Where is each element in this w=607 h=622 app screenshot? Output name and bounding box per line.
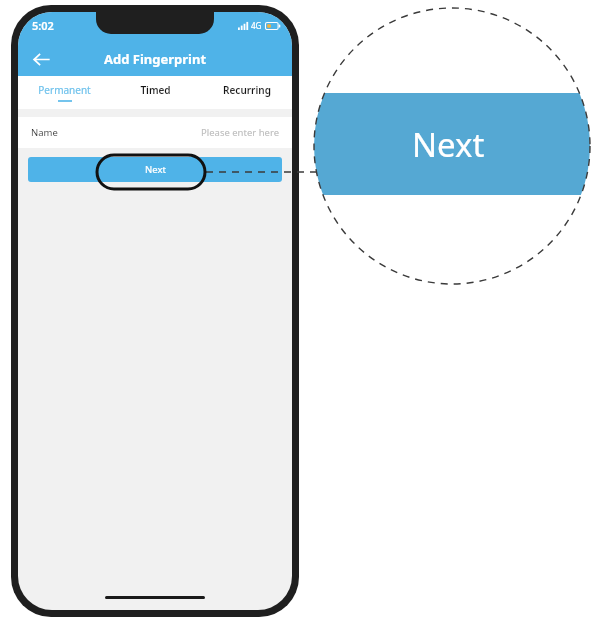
staticText: Please enter here: [201, 126, 279, 139]
staticText: 5:02: [32, 18, 54, 33]
button[interactable]: Timed: [110, 76, 201, 109]
staticText: Name: [31, 126, 58, 139]
staticText: Add Fingerprint: [104, 50, 207, 68]
staticText: Permanent: [38, 83, 91, 97]
staticText: Recurring: [223, 83, 271, 97]
button[interactable]: Name: [18, 117, 292, 148]
staticText: 4G: [251, 20, 262, 31]
button[interactable]: Permanent: [18, 76, 110, 109]
staticText: Next: [145, 163, 166, 176]
button[interactable]: Back: [25, 43, 57, 75]
staticText: Timed: [140, 83, 171, 97]
staticText: Next: [412, 122, 485, 167]
button[interactable]: Recurring: [201, 76, 292, 109]
button[interactable]: Next: [28, 157, 282, 182]
